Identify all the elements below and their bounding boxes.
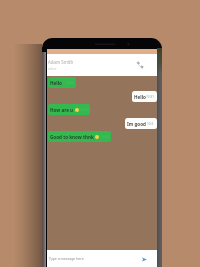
staticText: Hello [50, 80, 62, 86]
staticText: Adam Smith [48, 59, 74, 65]
staticText: Im good [127, 121, 147, 127]
staticText: 10:30 [66, 81, 74, 85]
button[interactable]: Send [139, 254, 149, 264]
button[interactable]: Hello [48, 77, 76, 88]
staticText: 10:30 [101, 135, 109, 139]
button[interactable]: Call [134, 59, 146, 71]
staticText: online [48, 67, 57, 71]
button[interactable]: Im good [125, 118, 157, 129]
staticText: 10:30 [80, 108, 88, 112]
staticText: Type a message here [49, 256, 139, 261]
staticText: How are u [50, 107, 74, 113]
button[interactable]: How are u [48, 104, 90, 115]
staticText: 10:31 [147, 122, 155, 126]
staticText: 10:31 [146, 95, 155, 99]
button[interactable]: Good to know thnk [48, 131, 111, 142]
staticText: Hello [134, 94, 146, 100]
staticText: Good to know thnk [50, 134, 94, 140]
button[interactable]: Hello [132, 91, 157, 102]
